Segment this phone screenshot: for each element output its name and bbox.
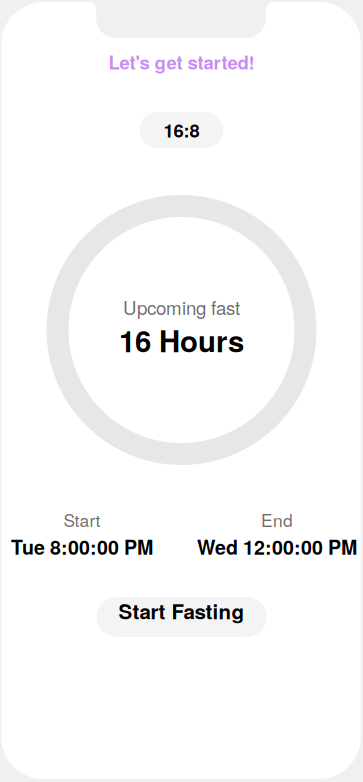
staticText: Tue 8:00:00 PM [11,533,153,561]
staticText: 16 Hours [119,319,244,361]
button[interactable]: Start Fasting [96,597,266,637]
staticText: Let's get started! [108,49,254,75]
staticText: 16:8 [163,117,199,143]
staticText: Start Fasting [118,596,244,626]
staticText: Wed 12:00:00 PM [197,533,357,561]
staticText: Start [63,507,100,532]
staticText: Upcoming fast [123,294,240,320]
staticText: End [261,507,293,532]
button[interactable]: 16:8 [139,112,223,148]
